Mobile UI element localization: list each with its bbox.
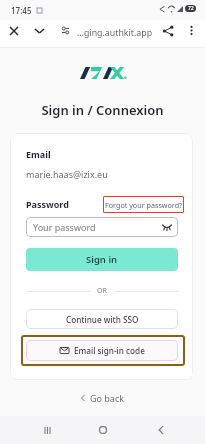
button[interactable]: Forgot your password? — [103, 196, 184, 213]
button[interactable]: Go back — [72, 389, 133, 407]
staticText: 17:45 — [11, 5, 32, 16]
button[interactable]: Home — [90, 417, 116, 443]
button[interactable]: Email sign-in code — [26, 340, 178, 361]
button[interactable]: Recent apps — [34, 417, 60, 443]
staticText: Forgot your password? — [105, 200, 183, 210]
staticText: OR — [97, 286, 107, 296]
staticText: Email sign-in code — [74, 345, 145, 356]
staticText: 72 — [188, 5, 194, 12]
staticText: marie.haas@izix.eu — [26, 168, 108, 180]
button[interactable]: Site settings — [57, 22, 73, 38]
staticText: Your password — [33, 221, 96, 233]
button[interactable]: Your password — [26, 217, 178, 237]
staticText: Email — [26, 148, 51, 160]
staticText: Go back — [90, 392, 125, 404]
staticText: …ging.authkit.app — [77, 27, 153, 39]
button[interactable]: Expand — [30, 21, 49, 40]
button[interactable]: Share — [158, 21, 177, 40]
button[interactable]: Back — [148, 417, 174, 443]
button[interactable]: Continue with SSO — [26, 309, 178, 329]
button[interactable]: Sign in — [26, 248, 178, 271]
button[interactable]: More options — [182, 21, 200, 39]
staticText: Continue with SSO — [66, 314, 139, 325]
staticText: Sign in — [86, 253, 118, 266]
staticText: Sign in / Connexion — [0, 101, 205, 119]
staticText: Password — [26, 198, 69, 210]
button[interactable]: Close — [4, 21, 23, 40]
